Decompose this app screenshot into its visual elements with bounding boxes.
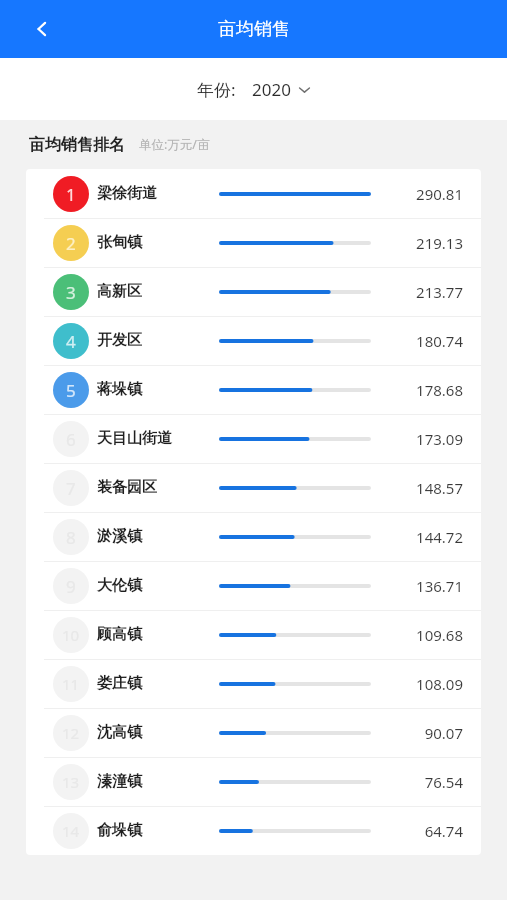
button[interactable]: 5 xyxy=(26,365,481,414)
staticText: 10 xyxy=(62,625,80,645)
staticText: 8 xyxy=(66,526,76,549)
staticText: 64.74 xyxy=(424,821,463,841)
staticText: 290.81 xyxy=(416,184,463,204)
button[interactable]: 13 xyxy=(26,757,481,806)
staticText: 180.74 xyxy=(416,331,463,351)
button[interactable]: 7 xyxy=(26,463,481,512)
button[interactable]: 年份: xyxy=(189,72,319,107)
staticText: 9 xyxy=(66,575,76,598)
staticText: 娄庄镇 xyxy=(97,674,142,693)
staticText: 219.13 xyxy=(416,233,463,253)
staticText: 单位:万元/亩 xyxy=(139,136,210,153)
staticText: 108.09 xyxy=(416,674,463,694)
button[interactable]: 11 xyxy=(26,659,481,708)
staticText: 109.68 xyxy=(416,625,463,645)
staticText: 144.72 xyxy=(416,527,463,547)
staticText: 213.77 xyxy=(416,282,463,302)
staticText: 梁徐街道 xyxy=(97,184,157,203)
button[interactable]: 6 xyxy=(26,414,481,463)
staticText: 178.68 xyxy=(416,380,463,400)
staticText: 173.09 xyxy=(416,429,463,449)
button[interactable]: 1 xyxy=(26,169,481,218)
staticText: 7 xyxy=(66,477,76,500)
staticText: 张甸镇 xyxy=(97,233,142,252)
staticText: 俞垛镇 xyxy=(97,821,142,840)
button[interactable]: 2 xyxy=(26,218,481,267)
staticText: 天目山街道 xyxy=(97,429,172,448)
staticText: 溱潼镇 xyxy=(97,772,142,791)
staticText: 2020 xyxy=(252,78,291,101)
staticText: 开发区 xyxy=(97,331,142,350)
staticText: 大伦镇 xyxy=(97,576,142,595)
button[interactable]: 3 xyxy=(26,267,481,316)
staticText: 亩均销售 xyxy=(218,18,290,41)
staticText: 亩均销售排名 xyxy=(29,135,125,155)
staticText: 1 xyxy=(66,183,76,206)
staticText: 11 xyxy=(62,674,80,694)
button[interactable]: 4 xyxy=(26,316,481,365)
staticText: 高新区 xyxy=(97,282,142,301)
staticText: 沈高镇 xyxy=(97,723,142,742)
staticText: 5 xyxy=(66,379,76,402)
button[interactable]: Back xyxy=(18,5,66,53)
staticText: 14 xyxy=(62,821,80,841)
button[interactable]: 9 xyxy=(26,561,481,610)
button[interactable]: 12 xyxy=(26,708,481,757)
staticText: 年份: xyxy=(197,78,236,101)
staticText: 12 xyxy=(62,723,80,743)
staticText: 3 xyxy=(66,281,76,304)
button[interactable]: 8 xyxy=(26,512,481,561)
staticText: 顾高镇 xyxy=(97,625,142,644)
staticText: 6 xyxy=(66,428,76,451)
button[interactable]: 10 xyxy=(26,610,481,659)
staticText: 148.57 xyxy=(416,478,463,498)
staticText: 136.71 xyxy=(416,576,463,596)
staticText: 淤溪镇 xyxy=(97,527,142,546)
staticText: 4 xyxy=(66,330,76,353)
staticText: 装备园区 xyxy=(97,478,157,497)
staticText: 2 xyxy=(66,232,76,255)
staticText: 13 xyxy=(62,772,80,792)
staticText: 76.54 xyxy=(424,772,463,792)
button[interactable]: 14 xyxy=(26,806,481,855)
staticText: 蒋垛镇 xyxy=(97,380,142,399)
staticText: 90.07 xyxy=(424,723,463,743)
